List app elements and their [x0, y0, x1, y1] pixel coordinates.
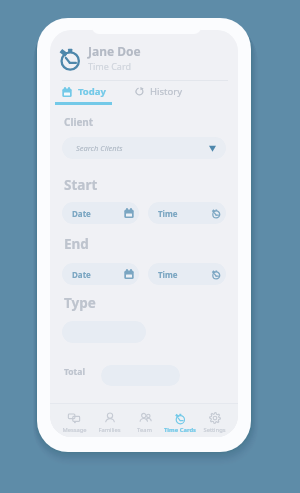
staticText: Settings	[203, 426, 226, 434]
button[interactable]: History	[133, 85, 184, 98]
staticText: Jane Doe	[88, 43, 141, 59]
button[interactable]: Date	[62, 263, 139, 285]
staticText: Total	[64, 366, 85, 378]
button[interactable]: Settings	[197, 408, 232, 434]
staticText: Today	[78, 85, 106, 98]
staticText: Start	[64, 176, 98, 194]
staticText: Time Card	[88, 60, 131, 72]
staticText: Message	[62, 426, 87, 434]
staticText: End	[64, 235, 89, 253]
staticText: Time Cards	[164, 426, 196, 434]
staticText: Client	[64, 115, 94, 129]
staticText: Type	[64, 294, 96, 312]
staticText: Search Clients	[76, 143, 123, 153]
button[interactable]: Today	[60, 85, 108, 98]
button[interactable]: Time	[148, 202, 226, 224]
staticText: Families	[98, 426, 121, 434]
staticText: Time	[158, 269, 178, 280]
staticText: History	[150, 85, 182, 98]
button[interactable]: Search Clients	[62, 137, 226, 159]
staticText: Date	[72, 208, 91, 219]
button[interactable]: Families	[92, 408, 127, 434]
button[interactable]: Time Cards	[162, 408, 197, 434]
button[interactable]: Date	[62, 202, 139, 224]
button[interactable]: Message	[56, 408, 92, 434]
staticText: Team	[137, 426, 152, 434]
button[interactable]: Time	[148, 263, 226, 285]
button[interactable]: Team	[127, 408, 162, 434]
staticText: Time	[158, 208, 178, 219]
staticText: Date	[72, 269, 91, 280]
